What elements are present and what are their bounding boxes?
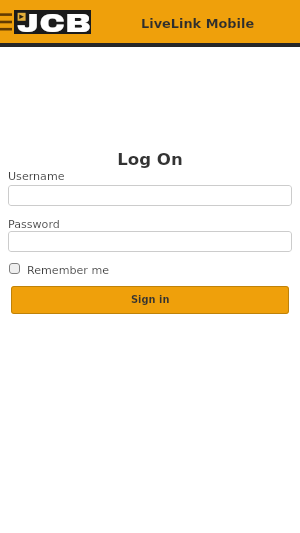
staticText: Log On [0, 150, 300, 169]
staticText: JCB [17, 9, 91, 34]
button[interactable]: JCB [14, 10, 91, 34]
button[interactable] [8, 185, 292, 206]
staticText: Username [8, 170, 65, 183]
button[interactable]: Remember me [8, 263, 110, 277]
button[interactable] [8, 231, 292, 252]
button[interactable]: Sign in [11, 286, 289, 314]
staticText: Sign in [131, 294, 170, 306]
staticText: LiveLink Mobile [141, 16, 255, 31]
staticText: Password [8, 218, 60, 231]
staticText: Remember me [27, 264, 110, 277]
button[interactable]: Menu [0, 0, 12, 42]
